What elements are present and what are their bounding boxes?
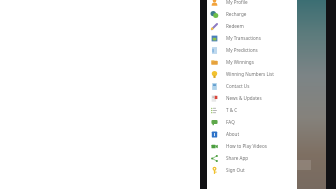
staticText: Redeem: [226, 23, 244, 29]
staticText: Sign Out: [226, 167, 245, 173]
button[interactable]: How to Play Videos: [207, 140, 297, 152]
staticText: Winning Numbers List: [226, 71, 274, 77]
button[interactable]: My Profile: [207, 0, 297, 8]
staticText: Contact Us: [226, 83, 250, 89]
button[interactable]: News & Updates: [207, 92, 297, 104]
button[interactable]: Contact Us: [207, 80, 297, 92]
button[interactable]: FAQ: [207, 116, 297, 128]
staticText: Share App: [226, 155, 249, 161]
staticText: How to Play Videos: [226, 143, 267, 149]
button[interactable]: Recharge: [207, 8, 297, 20]
button[interactable]: My Predictions: [207, 44, 297, 56]
staticText: Recharge: [226, 11, 247, 17]
button[interactable]: Share App: [207, 152, 297, 164]
staticText: T & C: [226, 107, 238, 113]
staticText: News & Updates: [226, 95, 262, 101]
staticText: FAQ: [226, 119, 235, 125]
button[interactable]: Redeem: [207, 20, 297, 32]
button[interactable]: Winning Numbers List: [207, 68, 297, 80]
button[interactable]: About: [207, 128, 297, 140]
button[interactable]: My Transactions: [207, 32, 297, 44]
button[interactable]: Sign Out: [207, 164, 297, 176]
staticText: My Transactions: [226, 35, 261, 41]
button[interactable]: My Winnings: [207, 56, 297, 68]
button[interactable]: T & C: [207, 104, 297, 116]
staticText: About: [226, 131, 240, 137]
staticText: My Predictions: [226, 47, 258, 53]
staticText: My Winnings: [226, 59, 254, 65]
staticText: My Profile: [226, 0, 248, 5]
